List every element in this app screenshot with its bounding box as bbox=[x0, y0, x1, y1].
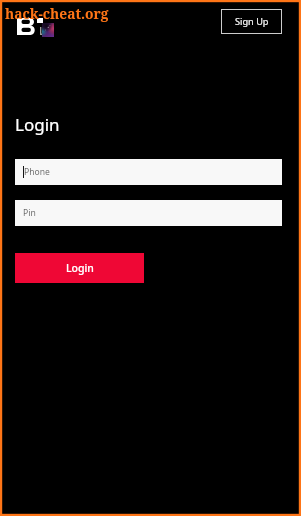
button[interactable]: App logo bbox=[14, 14, 56, 40]
staticText: Pin bbox=[23, 207, 36, 219]
staticText: Login bbox=[66, 261, 94, 275]
staticText: Sign Up bbox=[235, 15, 269, 28]
staticText: Login bbox=[15, 113, 60, 136]
button[interactable]: Sign Up bbox=[221, 9, 282, 34]
button[interactable]: Phone bbox=[15, 159, 282, 185]
staticText: hack-cheat.org bbox=[5, 4, 109, 23]
button[interactable]: Pin bbox=[15, 200, 282, 226]
button[interactable]: Login bbox=[15, 253, 144, 283]
staticText: Phone bbox=[24, 166, 50, 178]
